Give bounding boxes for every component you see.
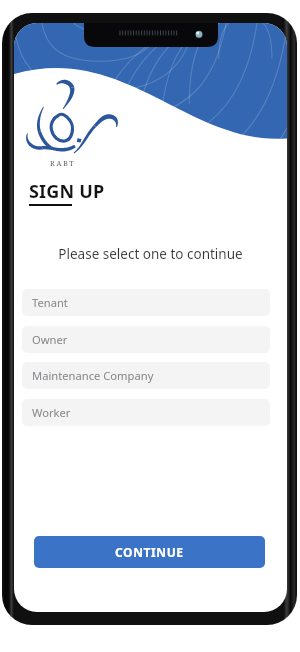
staticText: RABT	[50, 159, 76, 169]
button[interactable]: CONTINUE	[34, 536, 265, 568]
staticText: Tenant	[32, 295, 68, 310]
button[interactable]: Owner	[22, 326, 270, 353]
staticText: Please select one to continue	[14, 245, 287, 263]
staticText: Worker	[32, 405, 71, 420]
staticText: Owner	[32, 332, 68, 347]
staticText: CONTINUE	[115, 544, 184, 560]
staticText: Maintenance Company	[32, 368, 154, 383]
staticText: SIGN UP	[29, 179, 105, 204]
button[interactable]: Worker	[22, 399, 270, 426]
button[interactable]: Maintenance Company	[22, 362, 270, 389]
button[interactable]: Tenant	[22, 289, 270, 316]
